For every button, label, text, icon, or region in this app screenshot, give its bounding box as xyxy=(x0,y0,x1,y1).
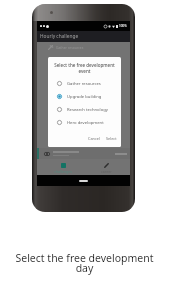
staticText: Hero development xyxy=(67,120,104,126)
staticText: Research technology xyxy=(67,107,108,113)
button[interactable]: Challenges xyxy=(42,159,85,175)
button[interactable]: Cancel xyxy=(86,134,102,143)
button[interactable]: Hourly challenge xyxy=(37,31,130,42)
button[interactable]: Gather resources xyxy=(48,77,121,90)
other: Challenges xyxy=(61,163,66,168)
staticText: Hourly challenge xyxy=(40,33,79,40)
staticText: Gather resources xyxy=(67,81,101,87)
button[interactable]: Hero development xyxy=(48,116,121,129)
staticText: career xyxy=(101,169,112,174)
button[interactable]: Upgrade building xyxy=(48,90,121,103)
button[interactable] xyxy=(37,148,130,159)
staticText: Gather resources xyxy=(56,45,84,50)
button[interactable]: Career xyxy=(85,159,128,175)
staticText: Select xyxy=(106,136,117,141)
button[interactable]: Select xyxy=(104,134,119,143)
staticText: Cancel xyxy=(88,136,100,141)
staticText: Upgrade building xyxy=(67,94,102,100)
staticText: Select the free development day xyxy=(0,251,169,275)
button[interactable]: Research technology xyxy=(48,103,121,116)
staticText: challenges xyxy=(54,169,73,174)
staticText: Select the free development event xyxy=(53,62,116,74)
button[interactable]: Gather resources xyxy=(37,43,130,52)
staticText: 100% xyxy=(119,24,127,28)
other: Career xyxy=(104,163,109,168)
